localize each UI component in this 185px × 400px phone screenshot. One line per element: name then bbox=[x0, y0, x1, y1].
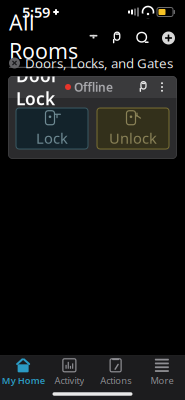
staticText: Lock bbox=[36, 128, 68, 148]
button[interactable]: Unlock bbox=[97, 108, 169, 149]
staticText: Offline bbox=[74, 79, 113, 95]
button[interactable]: My Home bbox=[0, 356, 46, 388]
staticText: Door Lock bbox=[16, 64, 59, 110]
button[interactable]: Search bbox=[135, 30, 150, 45]
button[interactable]: Pin Door Lock bbox=[135, 79, 150, 94]
staticText: Activity bbox=[54, 374, 84, 387]
staticText: More bbox=[150, 374, 173, 387]
button[interactable]: More options bbox=[155, 80, 169, 94]
staticText: My Home bbox=[2, 374, 45, 387]
button[interactable]: Pin bbox=[108, 30, 124, 46]
staticText: Doors, Locks, and Gates bbox=[25, 54, 173, 72]
button[interactable]: Actions bbox=[92, 356, 139, 388]
button[interactable]: All Rooms bbox=[0, 8, 104, 68]
button[interactable]: Doors, Locks, and Gates bbox=[0, 51, 179, 75]
staticText: Unlock bbox=[109, 128, 157, 148]
button[interactable]: Lock bbox=[16, 108, 88, 149]
button[interactable]: Activity bbox=[46, 356, 92, 388]
staticText: Actions bbox=[100, 374, 131, 387]
button[interactable]: Add bbox=[161, 30, 176, 45]
button[interactable]: More bbox=[139, 356, 185, 388]
staticText: 5:59 bbox=[22, 2, 50, 22]
staticText: All Rooms bbox=[9, 8, 78, 65]
